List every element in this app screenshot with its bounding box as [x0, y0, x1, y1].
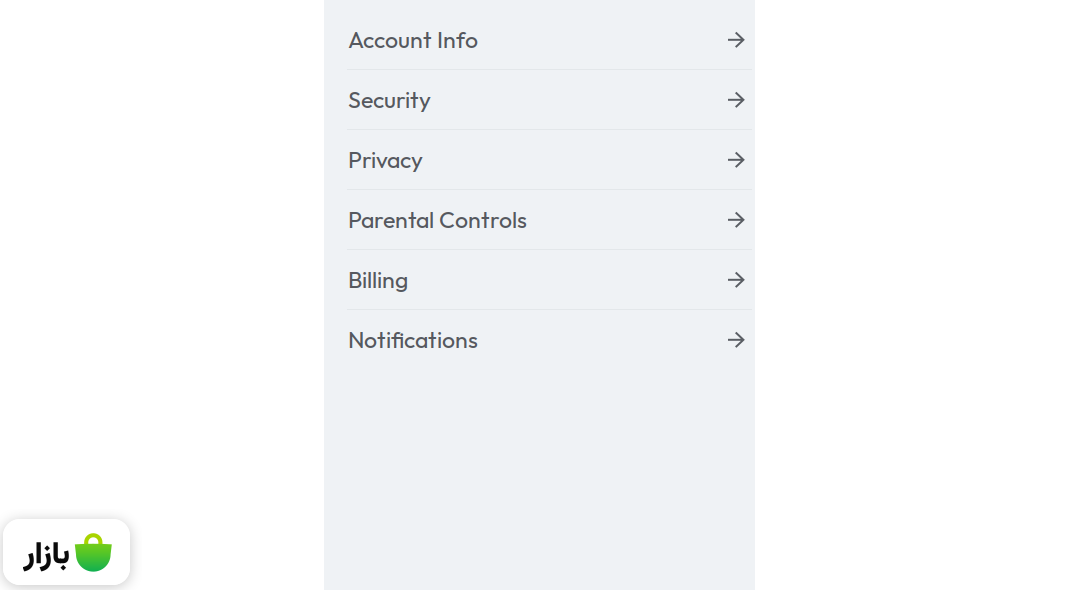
button[interactable]: Bazaar — [3, 519, 130, 585]
button[interactable]: Privacy — [324, 130, 755, 190]
button[interactable]: Account Info — [324, 10, 755, 70]
button[interactable]: Security — [324, 70, 755, 130]
staticText: Security — [348, 85, 431, 114]
button[interactable]: Notifications — [324, 310, 755, 370]
staticText: بازار — [23, 532, 69, 580]
staticText: Account Info — [348, 25, 478, 54]
button[interactable]: Billing — [324, 250, 755, 310]
staticText: Notifications — [348, 325, 478, 354]
staticText: Privacy — [348, 145, 423, 174]
staticText: Billing — [348, 265, 408, 294]
button[interactable]: Parental Controls — [324, 190, 755, 250]
staticText: Parental Controls — [348, 205, 527, 234]
